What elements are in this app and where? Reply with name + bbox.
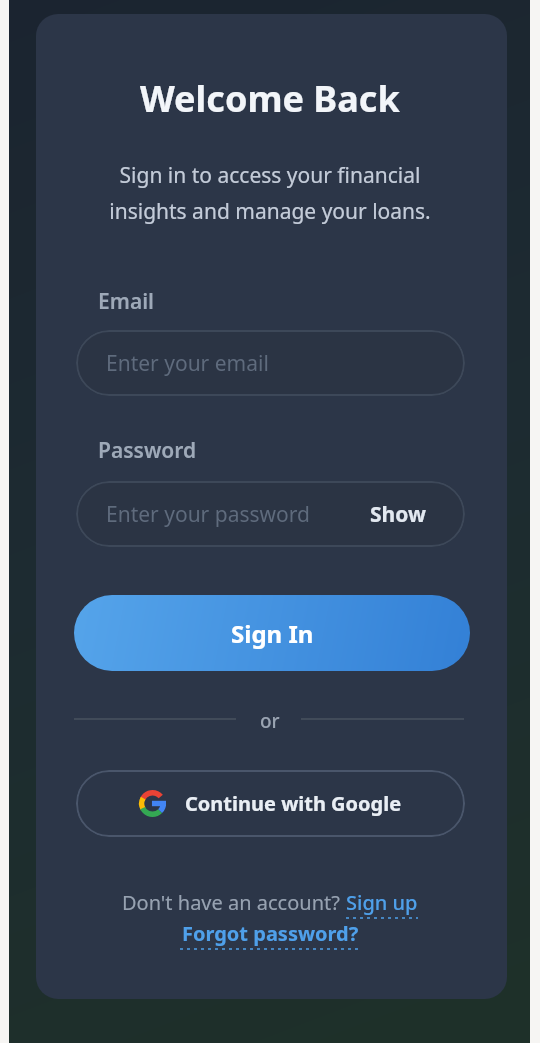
button[interactable]: Continue with Google <box>76 770 465 837</box>
staticText: or <box>260 708 280 734</box>
staticText: Sign in to access your financial insight… <box>109 161 431 225</box>
staticText: Email <box>98 287 155 316</box>
button[interactable]: Forgot password? <box>182 920 359 947</box>
staticText: Continue with Google <box>185 790 402 817</box>
staticText: Sign In <box>231 617 314 650</box>
staticText: Don't have an account? <box>122 889 346 916</box>
staticText: Welcome Back <box>140 74 400 123</box>
staticText: Enter your email <box>106 349 269 378</box>
staticText: Enter your password <box>106 500 310 529</box>
button[interactable]: Enter your email <box>76 330 465 396</box>
button[interactable]: Sign up <box>346 889 418 916</box>
button[interactable]: Sign In <box>74 595 470 671</box>
button[interactable]: Enter your password <box>76 481 465 547</box>
staticText: Password <box>98 436 197 465</box>
button[interactable]: Show <box>370 500 426 529</box>
